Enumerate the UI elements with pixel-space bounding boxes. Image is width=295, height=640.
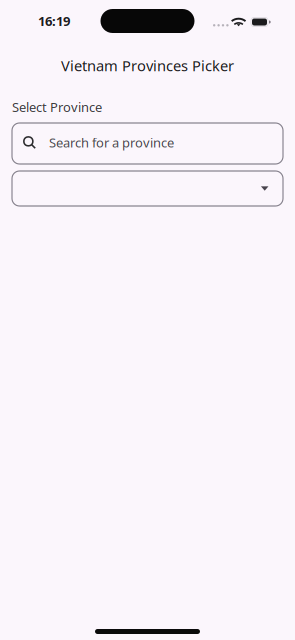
staticText: Search for a province [49, 134, 174, 151]
button[interactable]: Select a province [12, 171, 283, 206]
staticText: Vietnam Provinces Picker [61, 56, 234, 75]
staticText: Select Province [12, 98, 102, 116]
staticText: 16:19 [38, 12, 70, 30]
button[interactable]: Search for a province [12, 123, 283, 164]
